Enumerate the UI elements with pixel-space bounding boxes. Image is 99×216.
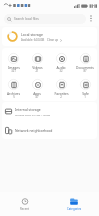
button[interactable]: Audio xyxy=(49,53,73,73)
button[interactable]: Categories xyxy=(49,192,99,216)
staticText: 1 xyxy=(84,95,86,99)
staticText: 321 xyxy=(11,69,16,73)
staticText: Audio xyxy=(56,65,66,69)
staticText: Favorites xyxy=(54,91,69,95)
button[interactable]: Search local files xyxy=(4,14,86,24)
staticText: Clean up xyxy=(47,38,59,42)
button[interactable]: Local storage xyxy=(2,27,97,46)
staticText: Categories xyxy=(67,207,82,211)
button[interactable]: Images xyxy=(2,53,25,73)
staticText: Recent xyxy=(20,207,29,211)
button[interactable]: Internal storage xyxy=(2,102,97,121)
button[interactable]: Documents xyxy=(73,53,97,73)
staticText: Network neighborhood xyxy=(15,128,53,133)
staticText: Safe xyxy=(82,91,89,95)
staticText: Storage used: 23.1GB / 128GB xyxy=(15,113,51,116)
button[interactable]: Network neighborhood xyxy=(2,121,97,139)
button[interactable]: Apps xyxy=(25,79,49,99)
staticText: Images xyxy=(8,65,20,69)
staticText: 47 xyxy=(35,95,39,99)
staticText: Available: 64.04GB xyxy=(21,38,45,42)
staticText: 87 xyxy=(83,69,87,73)
staticText: Local storage xyxy=(21,32,43,37)
staticText: Internal storage xyxy=(15,107,41,112)
button[interactable]: More options xyxy=(86,14,95,23)
staticText: Documents xyxy=(76,65,94,69)
staticText: 21 xyxy=(35,69,39,73)
staticText: 5 xyxy=(13,95,15,99)
button[interactable]: Favorites xyxy=(49,79,73,99)
button[interactable]: Videos xyxy=(25,53,49,73)
button[interactable]: Recent xyxy=(0,192,49,216)
staticText: Videos xyxy=(32,65,43,69)
button[interactable]: Archives xyxy=(2,79,25,99)
staticText: 32 xyxy=(59,69,63,73)
staticText: Apps xyxy=(33,91,41,95)
staticText: Search local files xyxy=(14,17,39,21)
button[interactable]: Safe xyxy=(73,79,97,99)
staticText: Archives xyxy=(7,91,20,95)
staticText: 2 xyxy=(60,95,62,99)
